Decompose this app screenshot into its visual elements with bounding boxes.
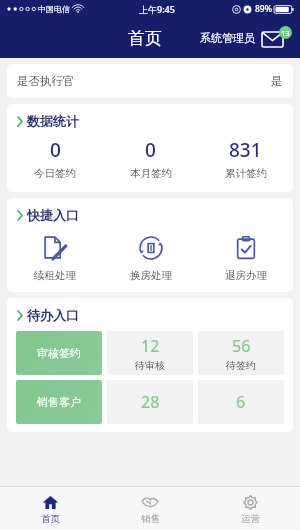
button[interactable]: 审核签约 (16, 331, 102, 375)
button[interactable]: 续租处理 (7, 233, 103, 282)
button[interactable]: Messages (262, 26, 292, 50)
staticText: 累计签约 (225, 167, 267, 180)
staticText: 56 (232, 335, 251, 357)
staticText: 12 (141, 335, 160, 357)
button[interactable]: 运营 (200, 487, 300, 530)
staticText: 是否执行官 (17, 74, 75, 88)
staticText: 中国电信 (38, 4, 70, 14)
staticText: 运营 (241, 513, 260, 525)
staticText: 0 (145, 137, 156, 163)
button[interactable]: 56 (198, 331, 284, 375)
button[interactable]: 销售 (100, 487, 200, 530)
staticText: 待审核 (135, 359, 165, 372)
staticText: 13 (281, 28, 290, 38)
button[interactable]: 首页 (0, 487, 100, 530)
staticText: 本月签约 (130, 167, 172, 180)
staticText: 6 (236, 391, 246, 413)
staticText: 0 (50, 137, 61, 163)
staticText: 换房处理 (130, 269, 172, 282)
staticText: 销售 (141, 513, 160, 525)
staticText: 首页 (128, 28, 162, 49)
button[interactable]: 系统管理员 (200, 31, 255, 45)
button[interactable]: 0 (103, 137, 198, 180)
staticText: 待签约 (226, 359, 256, 372)
button[interactable]: 6 (198, 380, 284, 424)
button[interactable]: 是否执行官 (7, 64, 293, 98)
staticText: 831 (229, 137, 262, 163)
staticText: 销售客户 (37, 395, 81, 409)
button[interactable]: 退房办理 (198, 233, 293, 282)
staticText: 是 (271, 74, 283, 88)
button[interactable]: 831 (198, 137, 293, 180)
staticText: 28 (141, 391, 160, 413)
button[interactable]: 销售客户 (16, 380, 102, 424)
button[interactable]: 12 (107, 331, 193, 375)
button[interactable]: 0 (7, 137, 103, 180)
staticText: 数据统计 (27, 113, 79, 129)
button[interactable]: 换房处理 (103, 233, 198, 282)
staticText: 待办入口 (27, 307, 79, 323)
staticText: 今日签约 (34, 167, 76, 180)
staticText: 审核签约 (37, 346, 81, 360)
staticText: 续租处理 (34, 269, 76, 282)
staticText: 89% (255, 3, 272, 15)
staticText: 上午9:45 (139, 3, 175, 15)
staticText: 退房办理 (225, 269, 267, 282)
button[interactable]: 28 (107, 380, 193, 424)
staticText: 快捷入口 (27, 207, 79, 223)
staticText: 首页 (41, 513, 60, 525)
